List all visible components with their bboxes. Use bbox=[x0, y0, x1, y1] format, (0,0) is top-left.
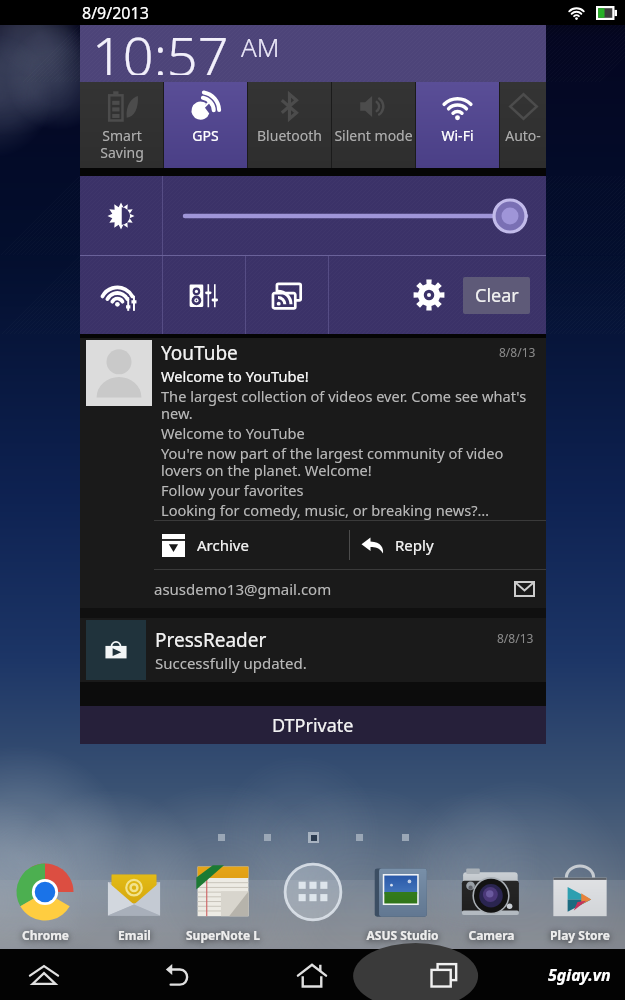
staticText: Welcome to YouTube! bbox=[161, 366, 309, 386]
button[interactable]: SuperNote L bbox=[182, 861, 264, 943]
staticText: Silent mode bbox=[334, 126, 413, 145]
button[interactable]: Recents bbox=[418, 949, 470, 1000]
staticText: ASUS Studio bbox=[366, 927, 439, 943]
staticText: Clear bbox=[475, 283, 519, 308]
button[interactable]: Page 2 bbox=[244, 831, 290, 843]
button[interactable]: Bluetooth bbox=[248, 82, 331, 168]
staticText: Archive bbox=[197, 535, 249, 555]
staticText: Smart Saving bbox=[100, 126, 144, 162]
staticText: asusdemo13@gmail.com bbox=[154, 579, 515, 599]
button[interactable]: Settings bbox=[401, 267, 457, 323]
button[interactable]: Play Store bbox=[539, 861, 621, 943]
staticText: Auto- bbox=[505, 126, 541, 145]
button[interactable]: Auto- bbox=[500, 82, 546, 168]
button[interactable]: Cast screen bbox=[246, 256, 328, 334]
button[interactable]: Page 3 bbox=[290, 831, 336, 843]
button[interactable]: asusdemo13@gmail.com bbox=[154, 570, 534, 608]
staticText: GPS bbox=[192, 126, 219, 145]
button[interactable]: Camera bbox=[450, 861, 532, 943]
staticText: Reply bbox=[395, 535, 434, 555]
button[interactable]: Back bbox=[152, 949, 204, 1000]
button[interactable]: Archive bbox=[154, 521, 349, 569]
staticText: You're now part of the largest community… bbox=[161, 443, 536, 480]
staticText: Chrome bbox=[22, 927, 69, 943]
button[interactable]: Home bbox=[286, 949, 338, 1000]
button[interactable] bbox=[163, 176, 546, 255]
staticText: 8/8/13 bbox=[497, 630, 534, 646]
staticText: Play Store bbox=[550, 927, 610, 943]
button[interactable]: Brightness bbox=[80, 176, 162, 255]
staticText: Email bbox=[118, 927, 151, 943]
button[interactable]: Email bbox=[93, 861, 175, 943]
staticText: Camera bbox=[468, 927, 515, 943]
button[interactable]: Silent mode bbox=[332, 82, 415, 168]
button[interactable]: Sound settings bbox=[163, 256, 245, 334]
staticText: 5giay.vn bbox=[548, 964, 611, 986]
button[interactable]: Page 1 bbox=[198, 831, 244, 843]
button[interactable]: Reply bbox=[350, 521, 546, 569]
button[interactable]: ASUS Studio bbox=[361, 861, 443, 943]
staticText: Wi-Fi bbox=[441, 126, 474, 145]
staticText: Follow your favorites bbox=[161, 480, 304, 500]
button[interactable]: DTPrivate bbox=[80, 706, 546, 744]
staticText: PressReader bbox=[155, 627, 267, 653]
staticText: 8/9/2013 bbox=[82, 2, 149, 24]
button[interactable]: Wi-Fi settings bbox=[80, 256, 162, 334]
staticText: Bluetooth bbox=[257, 126, 322, 145]
button[interactable]: Menu bbox=[18, 949, 70, 1000]
staticText: The largest collection of videos ever. C… bbox=[161, 386, 536, 423]
staticText: Successfully updated. bbox=[155, 653, 307, 673]
button[interactable]: PressReader bbox=[80, 618, 546, 682]
button[interactable]: YouTube bbox=[80, 338, 546, 618]
button[interactable]: Apps bbox=[272, 861, 354, 923]
button[interactable]: Chrome bbox=[4, 861, 86, 943]
button[interactable]: GPS bbox=[164, 82, 247, 168]
button[interactable]: Page 4 bbox=[336, 831, 382, 843]
staticText: 8/8/13 bbox=[499, 344, 536, 360]
staticText: SuperNote L bbox=[186, 927, 260, 943]
staticText: Looking for comedy, music, or breaking n… bbox=[161, 500, 490, 520]
staticText: AM bbox=[241, 29, 280, 64]
staticText: 10:57 bbox=[92, 18, 229, 75]
button[interactable]: Clear bbox=[463, 277, 530, 314]
staticText: Welcome to YouTube bbox=[161, 423, 305, 443]
staticText: YouTube bbox=[161, 340, 499, 366]
button[interactable]: Smart Saving bbox=[80, 82, 163, 168]
button[interactable]: Wi-Fi bbox=[416, 82, 499, 168]
staticText: DTPrivate bbox=[272, 713, 354, 738]
button[interactable]: Page 5 bbox=[382, 831, 428, 843]
